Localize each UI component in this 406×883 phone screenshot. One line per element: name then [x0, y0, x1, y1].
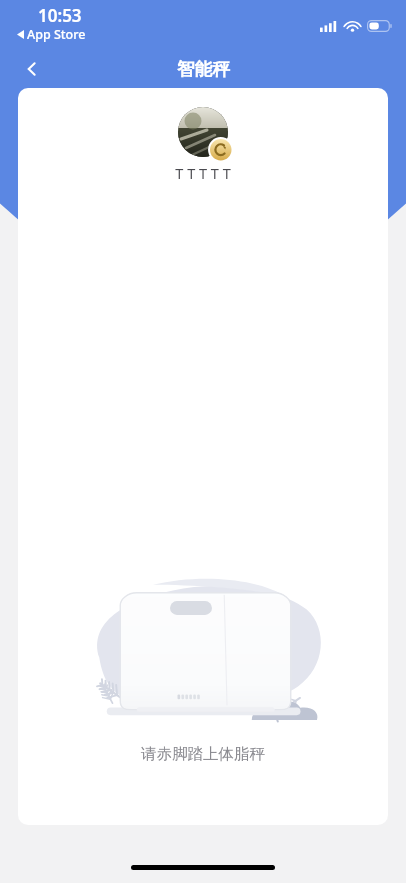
staticText: 10:53: [38, 4, 82, 27]
staticText: 请赤脚踏上体脂秤: [141, 744, 265, 764]
staticText: T T T T T: [175, 163, 231, 183]
button[interactable]: Back: [12, 50, 52, 88]
staticText: App Store: [27, 26, 86, 43]
button[interactable]: User avatar: [178, 107, 228, 157]
staticText: 智能秤: [177, 58, 230, 80]
